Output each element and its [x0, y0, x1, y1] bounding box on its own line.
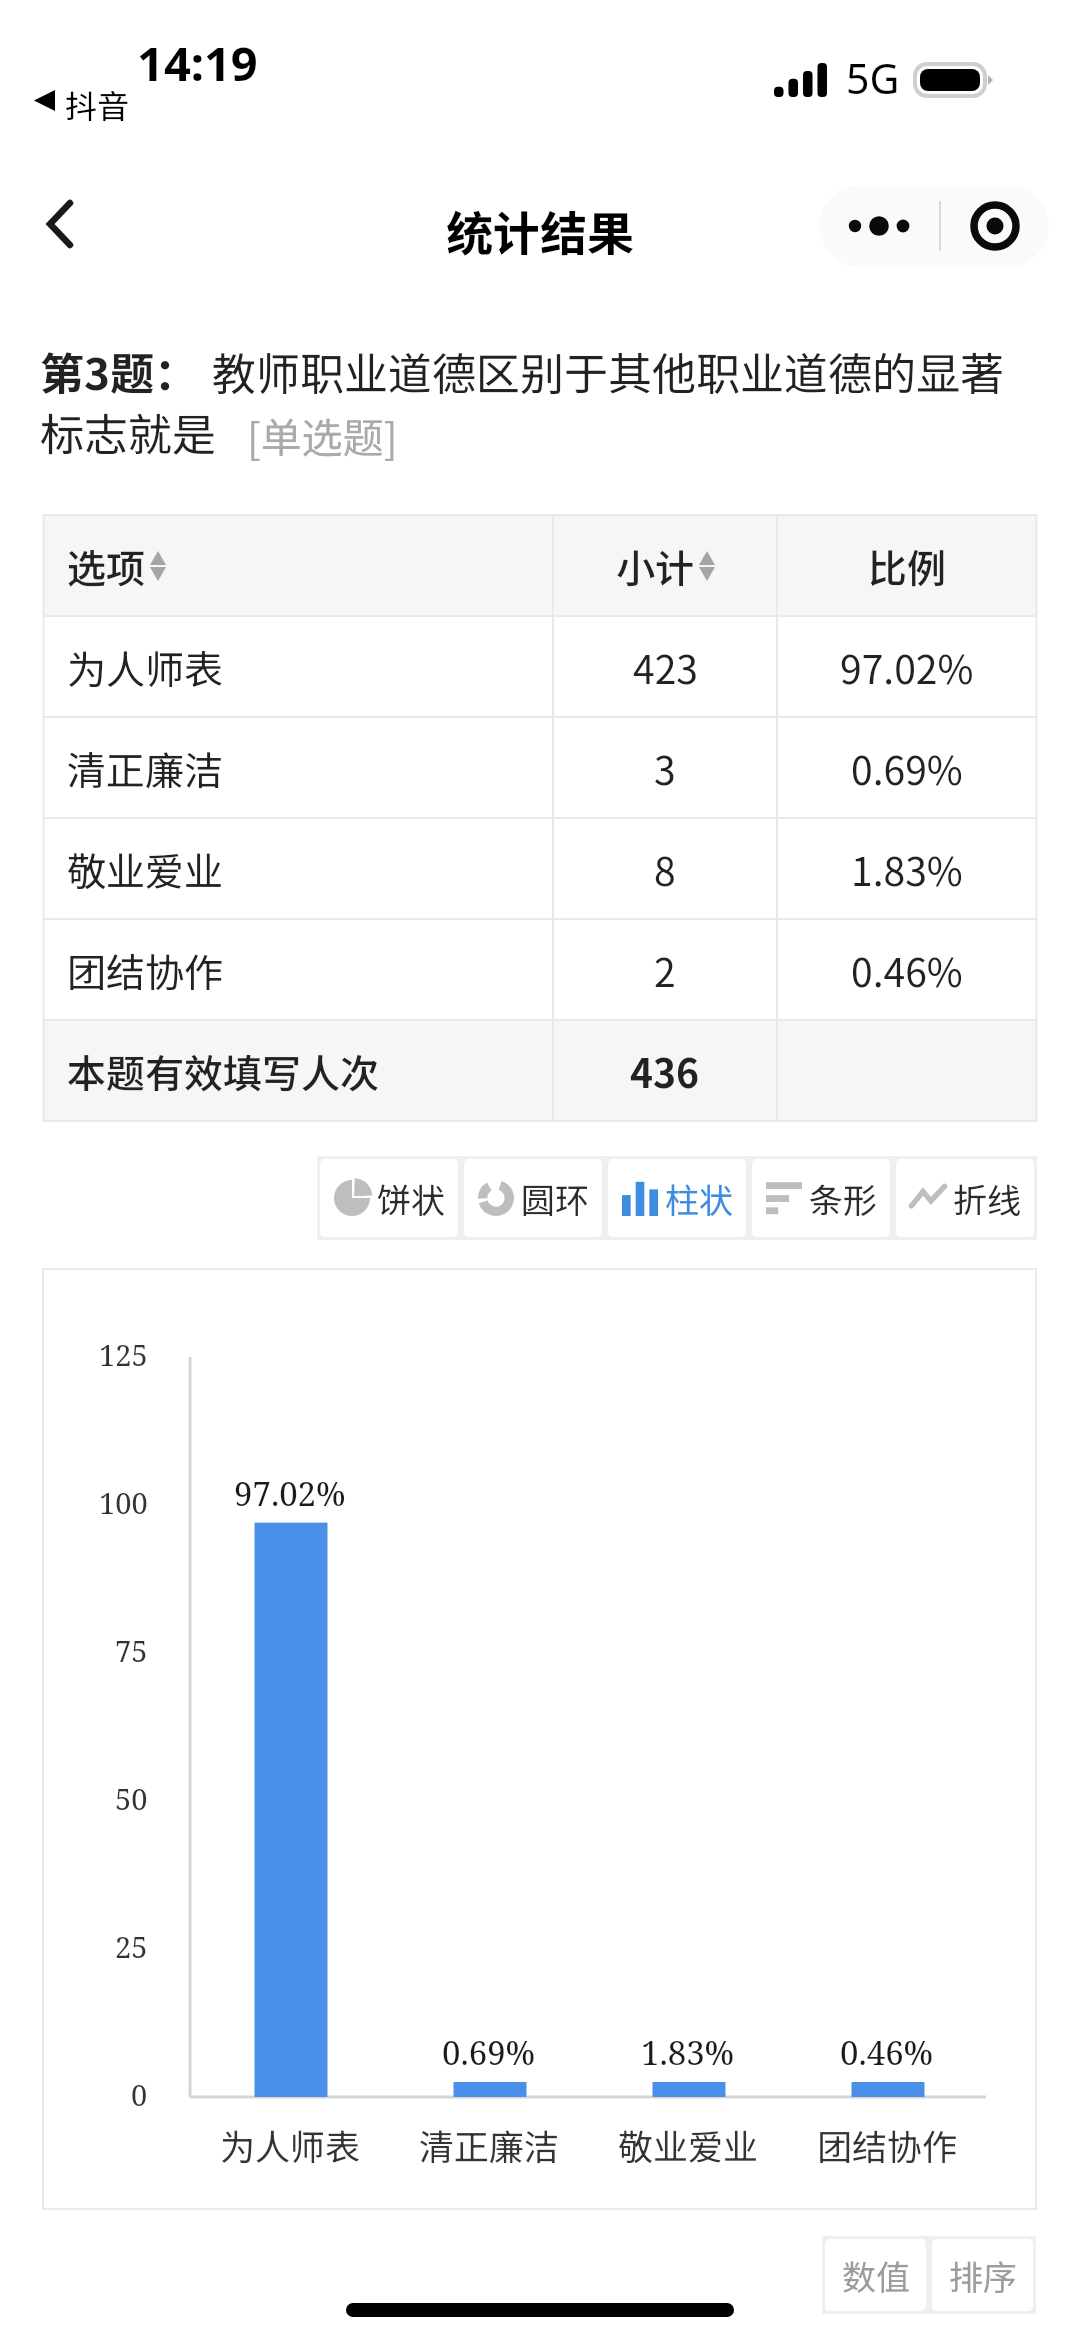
staticText: 14:19	[137, 31, 258, 95]
staticText: 1.83%	[641, 2030, 735, 2075]
button[interactable]: 条形	[752, 1159, 890, 1237]
staticText: 抖音	[65, 81, 130, 127]
staticText: 0.69%	[442, 2030, 536, 2075]
staticText: 25	[115, 1927, 148, 1966]
staticText: 排序	[949, 2251, 1017, 2300]
staticText: 3	[654, 740, 676, 796]
staticText: 清正廉洁	[67, 740, 224, 796]
button[interactable]: Close mini program	[941, 185, 1049, 267]
staticText: 折线	[953, 1174, 1021, 1223]
staticText: 75	[115, 1631, 148, 1670]
staticText: 选项	[67, 538, 146, 594]
staticText: 敬业爱业	[618, 2119, 759, 2170]
staticText: 0.46%	[840, 2030, 934, 2075]
staticText: 1.83%	[851, 841, 963, 897]
staticText: 423	[633, 639, 698, 695]
staticText: 97.02%	[840, 639, 974, 695]
staticText: 团结协作	[67, 942, 224, 998]
button[interactable]: 排序	[932, 2239, 1033, 2311]
button[interactable]: 清正廉洁	[43, 717, 1037, 818]
button[interactable]: Back	[15, 179, 105, 269]
staticText: 小计	[616, 538, 695, 594]
staticText: 0	[131, 2075, 148, 2114]
button[interactable]: 折线	[896, 1159, 1034, 1237]
staticText: 为人师表	[67, 639, 224, 695]
button[interactable]: 小计	[553, 515, 777, 616]
button[interactable]: 圆环	[464, 1159, 602, 1237]
staticText: 清正廉洁	[419, 2119, 560, 2170]
staticText: 柱状	[665, 1174, 733, 1223]
staticText: 436	[630, 1043, 700, 1099]
button[interactable]: More	[819, 185, 939, 267]
staticText: [单选题]	[247, 405, 398, 464]
staticText: 为人师表	[220, 2119, 361, 2170]
staticText: 比例	[868, 538, 947, 594]
staticText: 5G	[846, 50, 900, 106]
staticText: 0.46%	[851, 942, 963, 998]
button[interactable]: 选项	[43, 515, 553, 616]
staticText: 8	[654, 841, 676, 897]
staticText: 圆环	[521, 1174, 589, 1223]
button[interactable]: 柱状	[608, 1159, 746, 1237]
staticText: 统计结果	[446, 196, 634, 264]
staticText: 97.02%	[234, 1471, 346, 1516]
staticText: 条形	[809, 1174, 877, 1223]
button[interactable]: 敬业爱业	[43, 818, 1037, 919]
staticText: 教师职业道德区别于其他职业道德的显著	[212, 339, 1004, 403]
staticText: 敬业爱业	[67, 841, 224, 897]
staticText: 第3题：	[40, 339, 198, 403]
staticText: 标志就是	[40, 400, 216, 464]
staticText: 本题有效填写人次	[67, 1043, 380, 1099]
button[interactable]: 为人师表	[43, 616, 1037, 717]
staticText: 数值	[842, 2251, 910, 2300]
staticText: 饼状	[377, 1174, 445, 1223]
button[interactable]: 团结协作	[43, 919, 1037, 1020]
staticText: 0.69%	[851, 740, 963, 796]
staticText: 2	[654, 942, 676, 998]
button[interactable]: 数值	[825, 2239, 926, 2311]
staticText: 125	[99, 1335, 148, 1374]
staticText: 100	[99, 1483, 148, 1522]
button[interactable]: 饼状	[320, 1159, 458, 1237]
staticText: 团结协作	[817, 2119, 958, 2170]
staticText: 50	[115, 1779, 148, 1818]
